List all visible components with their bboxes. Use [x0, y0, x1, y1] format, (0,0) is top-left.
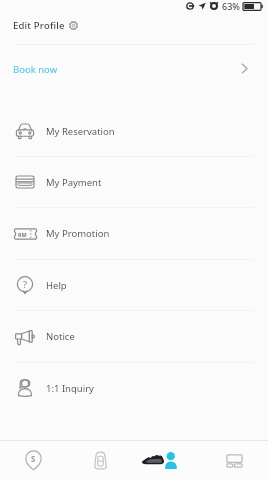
button[interactable]: My page	[134, 441, 201, 480]
staticText: Help	[46, 279, 67, 292]
button[interactable]: My Payment	[0, 157, 268, 207]
button[interactable]: Vehicle control	[67, 441, 134, 480]
staticText: My Payment	[46, 176, 102, 189]
staticText: ?	[23, 278, 27, 290]
button[interactable]: ?	[0, 260, 268, 310]
staticText: Edit Profile	[13, 19, 65, 32]
button[interactable]: Find station	[0, 441, 67, 480]
staticText: Notice	[46, 330, 75, 343]
button[interactable]: 1:1 Inquiry	[0, 363, 268, 413]
button[interactable]: Notice	[0, 311, 268, 362]
staticText: 1:1 Inquiry	[46, 382, 94, 395]
button[interactable]: My Reservation	[0, 106, 268, 156]
staticText: S	[31, 453, 36, 464]
staticText: My Promotion	[46, 227, 110, 240]
staticText: My Reservation	[46, 125, 115, 138]
staticText: Book now	[13, 63, 58, 76]
button[interactable]: Dashboard	[201, 441, 268, 480]
staticText: RM	[18, 231, 27, 238]
button[interactable]: Edit Profile	[12, 15, 79, 36]
staticText: 63%	[222, 0, 240, 12]
button[interactable]: RM	[0, 208, 268, 259]
button[interactable]: Book now	[0, 45, 268, 89]
